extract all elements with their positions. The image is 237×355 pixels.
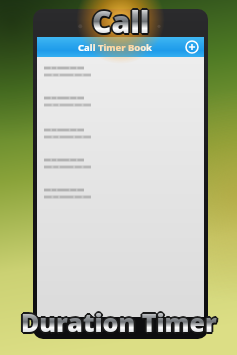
button[interactable]: [44, 188, 204, 199]
staticText: Call: [92, 0, 150, 37]
staticText: Duration Timer: [21, 305, 217, 339]
staticText: Call: [93, 3, 151, 41]
staticText: Duration Timer: [22, 304, 218, 338]
staticText: Call: [90, 1, 148, 39]
staticText: Duration Timer: [19, 305, 215, 339]
button[interactable]: [44, 158, 204, 169]
staticText: Duration Timer: [20, 304, 216, 338]
staticText: Call Timer Book: [78, 41, 152, 54]
staticText: Duration Timer: [21, 307, 217, 341]
staticText: Duration Timer: [21, 303, 217, 337]
staticText: Call: [91, 0, 149, 38]
staticText: Duration Timer: [22, 306, 218, 340]
staticText: Call: [93, 2, 151, 40]
staticText: Duration Timer: [22, 307, 218, 341]
button[interactable]: [44, 66, 204, 77]
button[interactable]: [44, 128, 204, 139]
staticText: Call: [94, 1, 152, 39]
staticText: Call: [93, 0, 151, 38]
staticText: Duration Timer: [20, 306, 216, 340]
staticText: Duration Timer: [23, 305, 219, 339]
button[interactable]: Add: [183, 38, 201, 56]
button[interactable]: Call Timer Book: [37, 37, 204, 57]
button[interactable]: [44, 96, 204, 107]
staticText: Call: [92, 3, 150, 41]
staticText: Call: [92, 1, 150, 39]
staticText: Call: [91, 2, 149, 40]
